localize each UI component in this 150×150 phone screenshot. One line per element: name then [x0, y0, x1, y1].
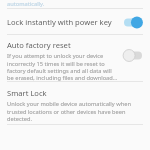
button[interactable]: Lock instantly with power key	[0, 9, 150, 34]
staticText: automatically.	[7, 0, 45, 8]
button[interactable]: Switch on	[122, 15, 144, 29]
button[interactable]: Auto factory reset	[0, 35, 150, 81]
staticText: Lock instantly with power key	[7, 17, 119, 27]
staticText: Auto factory reset	[7, 40, 71, 50]
staticText: If you attempt to unlock your device inc…	[7, 52, 119, 81]
staticText: Unlock your mobile device automatically …	[7, 100, 143, 122]
button[interactable]: Smart Lock	[0, 82, 150, 124]
staticText: Smart Lock	[7, 88, 47, 98]
button[interactable]: Switch off	[122, 48, 144, 62]
